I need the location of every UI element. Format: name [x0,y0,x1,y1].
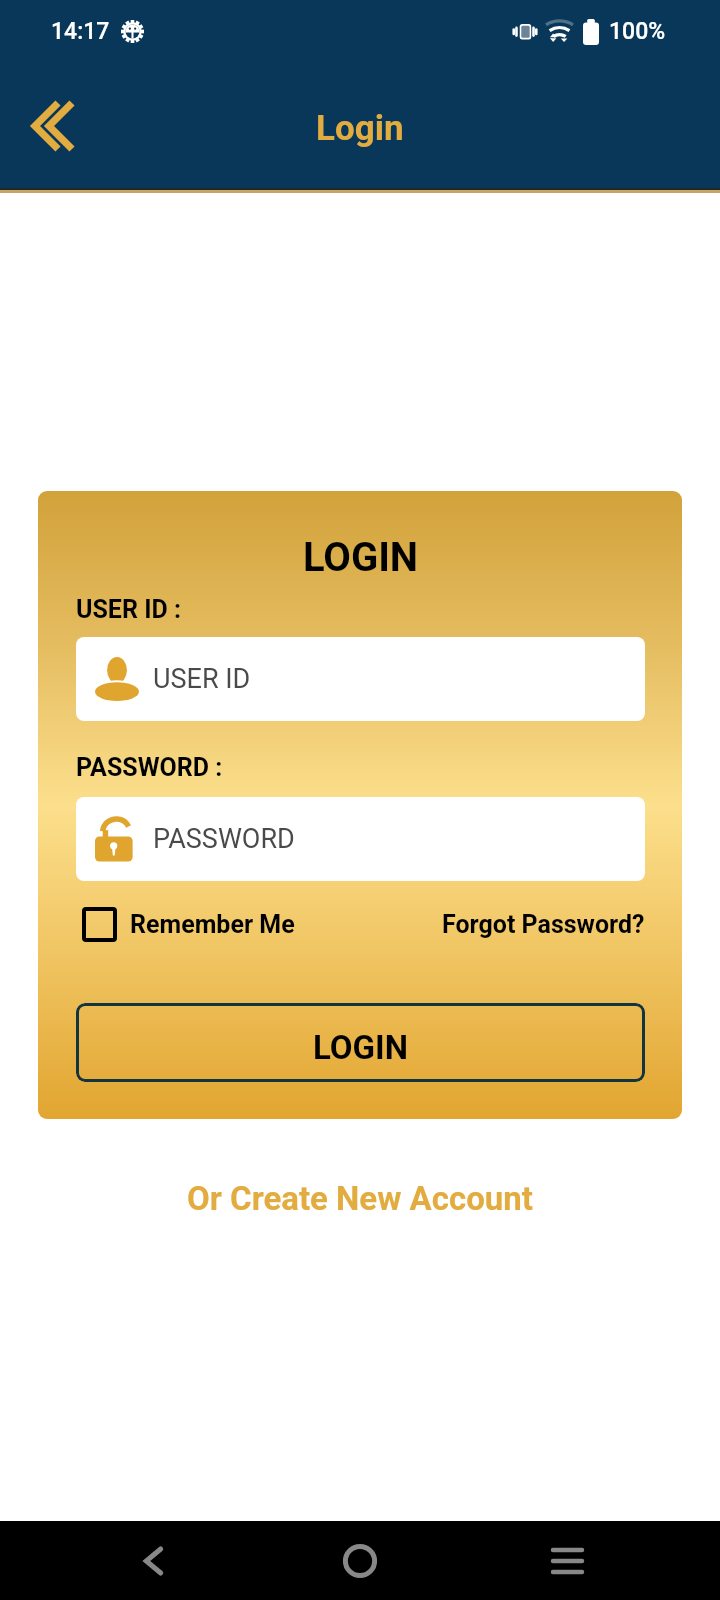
button[interactable]: Forgot Password? [442,910,645,939]
button[interactable]: Remember Me [76,907,295,942]
staticText: Forgot Password? [442,910,645,939]
staticText: PASSWORD : [76,753,223,782]
button[interactable]: LOGIN [76,1003,645,1082]
staticText: USER ID [153,663,251,695]
staticText: 14:17 [51,18,110,45]
button[interactable]: Back [18,93,80,159]
staticText: Login [316,108,404,149]
button[interactable]: Back [120,1528,186,1594]
button[interactable]: Home [327,1528,393,1594]
staticText: USER ID : [76,595,181,624]
button[interactable]: PASSWORD [76,797,645,881]
button[interactable]: USER ID [76,637,645,721]
button[interactable]: Recent apps [534,1528,600,1594]
staticText: LOGIN [76,534,645,581]
staticText: Remember Me [130,910,295,939]
staticText: LOGIN [313,1028,408,1067]
button[interactable]: Or Create New Account [179,1177,541,1220]
staticText: Or Create New Account [187,1179,533,1218]
staticText: PASSWORD [153,823,295,855]
staticText: 100% [609,18,666,45]
